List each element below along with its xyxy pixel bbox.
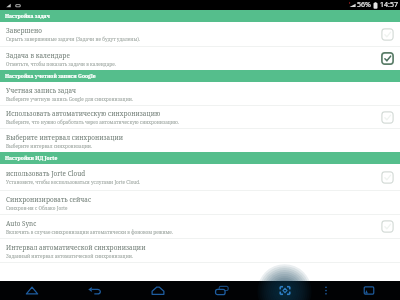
staticText: использовать Jorte Cloud xyxy=(6,169,86,178)
button[interactable]: Учетная запись задач xyxy=(0,82,400,105)
staticText: Задача в календаре xyxy=(6,51,70,60)
button[interactable]: Home xyxy=(147,281,169,300)
staticText: Скрыть завершенные задачи (Задачи не буд… xyxy=(6,36,141,42)
button[interactable]: Синхронизировать сейчас xyxy=(0,191,400,214)
button[interactable]: Back xyxy=(84,281,106,300)
button[interactable]: Завершено xyxy=(0,22,400,46)
staticText: Настройка учетной записи Google xyxy=(5,73,96,80)
staticText: Настройка задач xyxy=(5,13,50,20)
staticText: Выберите, что нужно обработать через авт… xyxy=(6,119,179,125)
button[interactable]: Использовать автоматическую синхронизаци… xyxy=(0,106,400,128)
staticText: 56% xyxy=(357,0,371,10)
button[interactable]: More options xyxy=(315,281,337,300)
button[interactable]: Menu xyxy=(21,281,43,300)
staticText: Настройки ИД Jorte xyxy=(5,155,58,162)
staticText: Использовать автоматическую синхронизаци… xyxy=(6,109,161,118)
button[interactable]: Auto Sync xyxy=(0,215,400,238)
staticText: Auto Sync xyxy=(6,219,37,228)
staticText: Учетная запись задач xyxy=(6,86,77,95)
staticText: Выберите интервал синхронизации. xyxy=(6,143,93,149)
button[interactable]: Задача в календаре xyxy=(0,47,400,70)
staticText: Выберите интервал синхронизации xyxy=(6,133,124,142)
staticText: Отметьте, чтобы показать задачи в календ… xyxy=(6,61,116,67)
button[interactable]: использовать Jorte Cloud xyxy=(0,164,400,190)
staticText: Включить в случае синхронизации автомати… xyxy=(6,229,174,235)
button[interactable]: Интервал автоматической синхронизации xyxy=(0,239,400,262)
staticText: Интервал автоматической синхронизации xyxy=(6,243,146,252)
staticText: Заданный интервал автоматической синхрон… xyxy=(6,253,134,259)
staticText: Завершено xyxy=(6,26,42,35)
staticText: Синхронизировать сейчас xyxy=(6,195,92,204)
staticText: 14:57 xyxy=(380,0,398,10)
staticText: Установите, чтобы воспользоваться услуга… xyxy=(6,179,141,185)
staticText: Выберите учетную запись Google для синхр… xyxy=(6,96,134,102)
button[interactable]: Выберите интервал синхронизации xyxy=(0,129,400,152)
staticText: Синхрон-ия с Облако Jorte xyxy=(6,205,68,211)
button[interactable]: Recent apps xyxy=(211,281,233,300)
button[interactable]: Screenshot xyxy=(358,281,380,300)
button[interactable]: Smart capture xyxy=(274,281,296,300)
